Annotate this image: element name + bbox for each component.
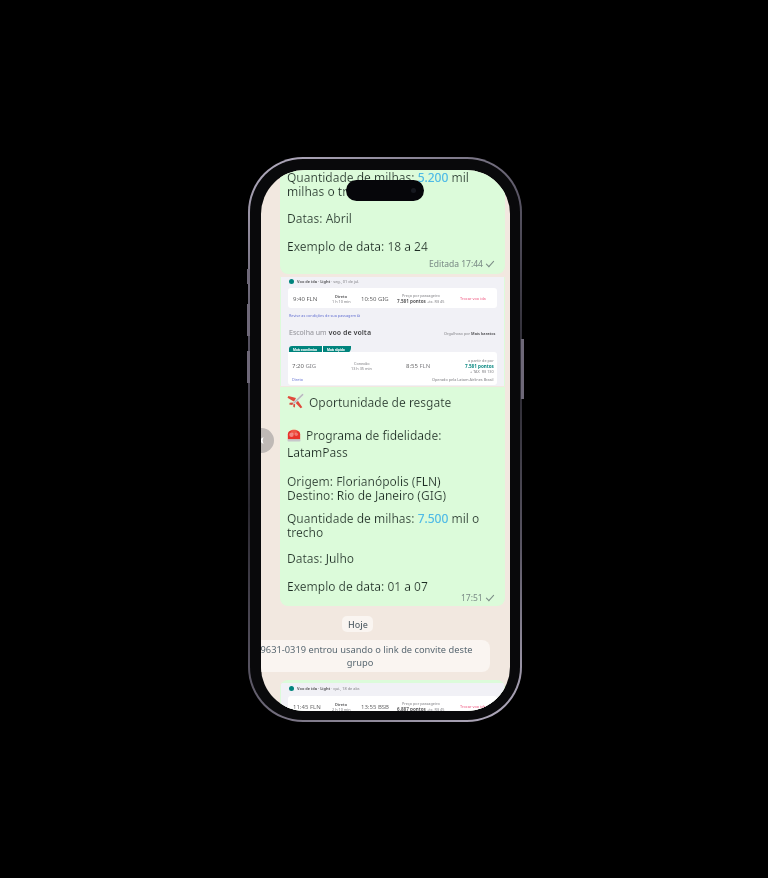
staticText: Direto [335,702,348,707]
staticText: LatamPass [287,444,348,460]
staticText: Voo de ida · Light · qui., 18 de abr. [297,686,360,691]
staticText: Quantidade de milhas: 7.500 mil o trecho [287,510,498,541]
staticText: Datas: Julho [287,550,355,566]
staticText: Mais rápido [327,348,345,352]
staticText: Trocar voo ida [460,704,486,709]
staticText: 7:20 GIG [292,362,317,370]
staticText: Escolha um voo de volta [289,328,372,338]
staticText: Orgulhoso por Mais baratos [444,331,496,336]
staticText: Quantidade de milhas: 5.200 mil milhas o… [287,170,498,200]
staticText: 9:40 FLN [293,295,318,303]
staticText: Editada 17:44 [429,258,483,270]
staticText: 11:45 FLN [293,703,321,711]
staticText: Conexão [354,361,370,366]
staticText: Preço por passageiro [402,293,440,298]
staticText: 8:55 FLN [406,362,431,370]
button[interactable]: Reply [261,428,274,453]
button[interactable]: Oportunidade de resgate [280,387,505,606]
staticText: Oportunidade de resgate [309,394,452,410]
staticText: Voo de ida · Light · seg., 01 de jul. [297,279,360,284]
staticText: Direto [292,377,304,382]
staticText: Revise as condições de sua passagem ⧉ [289,313,360,318]
staticText: Direto [335,294,348,299]
staticText: 7.581 pontos [397,298,426,304]
staticText: Origem: Florianópolis (FLN) Destino: Rio… [287,473,447,504]
staticText: Mais econômico [293,348,318,352]
staticText: Trocar voo ida [460,296,486,301]
staticText: Programa de fidelidade: [306,427,442,443]
staticText: +tx. R$ 45 [426,707,445,711]
staticText: Hoje [348,618,368,630]
staticText: +tx. R$ 45 [426,299,445,304]
staticText: Exemplo de data: 01 a 07 [287,578,428,594]
staticText: 6.887 pontos [397,706,426,711]
staticText: 48 9631-0319 entrou usando o link de con… [261,643,480,669]
button[interactable]: Voo de ida · Light · seg., 01 de jul. [280,277,505,386]
staticText: Preço por passageiro [402,701,440,706]
staticText: 13 h 35 min [351,366,372,371]
button[interactable]: Quantidade de milhas: 5.200 mil milhas o… [280,170,505,274]
staticText: a partir de por [468,358,494,363]
staticText: Datas: Abril [287,210,352,226]
staticText: Operado pela Latam Airlines Brasil [432,377,494,382]
staticText: 17:51 [461,592,483,604]
staticText: 7.581 pontos [465,363,494,369]
button[interactable]: Hoje [342,616,373,632]
staticText: + TAX R$ 130 [470,369,494,374]
staticText: 2 h 10 min [332,707,351,711]
staticText: 1 h 10 min [332,299,351,304]
staticText: Exemplo de data: 18 a 24 [287,238,428,254]
button[interactable]: Voo de ida · Light · qui., 18 de abr. [280,680,505,711]
staticText: 13:55 BSB [361,703,389,711]
staticText: 10:50 GIG [361,295,389,303]
